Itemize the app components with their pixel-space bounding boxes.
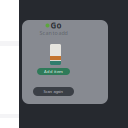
staticText: Go bbox=[50, 20, 61, 31]
button[interactable]: Add item bbox=[37, 68, 70, 75]
staticText: Scan again bbox=[43, 89, 63, 94]
staticText: Add item bbox=[44, 69, 63, 74]
button[interactable]: Scan again bbox=[33, 87, 74, 96]
staticText: Scan to add bbox=[39, 29, 67, 37]
